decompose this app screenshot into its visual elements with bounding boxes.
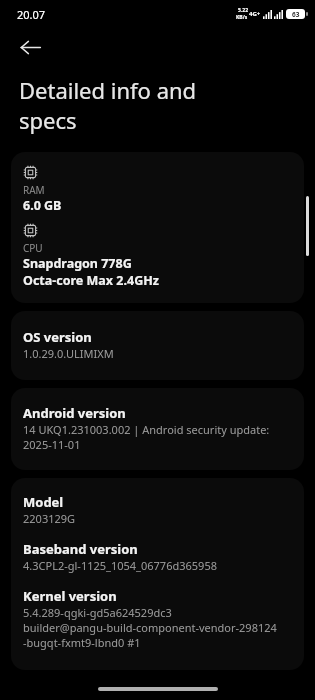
staticText: Kernel version [23, 587, 117, 605]
staticText: -bugqt-fxmt9-lbnd0 #1 [23, 635, 141, 650]
staticText: 5.22 [238, 7, 248, 14]
staticText: RAM [23, 183, 45, 197]
staticText: 6.0 GB [23, 197, 62, 214]
staticText: 4G+ [249, 10, 261, 18]
button[interactable]: Android version [11, 388, 304, 470]
staticText: 5.4.289-qgki-gd5a624529dc3 [23, 605, 172, 620]
staticText: Android version [23, 404, 126, 422]
staticText: KB/s [236, 14, 248, 21]
staticText: OS version [23, 328, 92, 346]
staticText: builder@pangu-build-component-vendor-298… [23, 620, 277, 635]
staticText: specs [19, 105, 77, 135]
staticText: 20.07 [17, 7, 46, 22]
staticText: 4.3CPL2-gl-1125_1054_06776d365958 [23, 558, 217, 573]
button[interactable]: RAM [11, 152, 304, 303]
staticText: CPU [23, 241, 43, 255]
staticText: Octa-core Max 2.4GHz [23, 272, 159, 289]
staticText: 63 [292, 10, 300, 19]
staticText: 14 UKQ1.231003.002 | Android security up… [23, 422, 270, 437]
staticText: Baseband version [23, 540, 138, 558]
button[interactable]: Model [11, 478, 304, 670]
staticText: Model [23, 493, 64, 511]
staticText: 2203129G [23, 511, 76, 526]
staticText: 1.0.29.0.ULIMIXM [23, 346, 114, 361]
staticText: Snapdragon 778G [23, 255, 132, 272]
button[interactable]: Back [12, 29, 48, 65]
button[interactable]: OS version [11, 311, 304, 380]
staticText: Detailed info and [19, 75, 197, 105]
staticText: 2025-11-01 [23, 437, 81, 452]
